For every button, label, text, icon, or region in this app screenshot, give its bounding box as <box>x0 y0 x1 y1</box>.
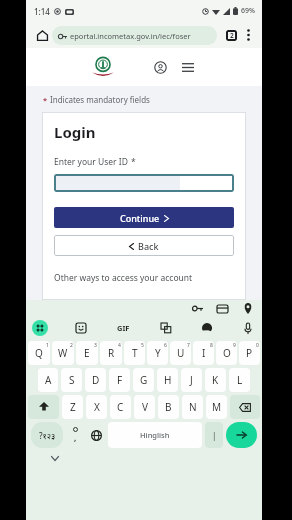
button[interactable]: Q <box>28 341 50 365</box>
button[interactable]: F <box>109 368 130 392</box>
staticText: Q <box>35 346 43 360</box>
button[interactable]: | <box>205 422 223 448</box>
staticText: Y <box>155 346 161 360</box>
button[interactable]: B <box>158 395 179 419</box>
button[interactable]: S <box>61 368 82 392</box>
staticText: K <box>212 373 219 387</box>
button[interactable]: Account <box>150 57 170 77</box>
staticText: GIF <box>117 323 130 333</box>
button[interactable]: Shift <box>28 395 59 419</box>
button[interactable]: Themes <box>199 320 215 336</box>
staticText: I <box>202 346 206 360</box>
staticText: P <box>246 346 253 360</box>
staticText: B <box>165 400 172 414</box>
staticText: 3 <box>94 342 97 349</box>
staticText: C <box>117 400 124 414</box>
button[interactable]: X <box>86 395 107 419</box>
button[interactable]: P <box>239 341 260 365</box>
button[interactable]: GIF <box>114 319 132 337</box>
button[interactable]: Voice input <box>240 320 256 336</box>
staticText: X <box>94 400 100 414</box>
staticText: V <box>142 400 148 414</box>
staticText: M <box>212 400 222 414</box>
staticText: A <box>45 373 52 387</box>
button[interactable]: Emoji <box>73 320 89 336</box>
staticText: 5 <box>141 342 144 349</box>
staticText: 2 <box>230 31 234 40</box>
button[interactable]: Home <box>32 25 52 45</box>
button[interactable]: O <box>216 341 237 365</box>
button[interactable]: ?१२३ <box>31 422 63 448</box>
button[interactable]: Backspace <box>230 395 260 419</box>
button[interactable]: Payment cards <box>216 302 229 315</box>
button[interactable]: N <box>182 395 203 419</box>
button[interactable]: Hide keyboard <box>48 451 62 465</box>
button[interactable]: U <box>170 341 191 365</box>
button[interactable]: Comma <box>66 422 84 448</box>
button[interactable]: eportal.incometax.gov.in/iec/foser <box>52 26 217 45</box>
button[interactable]: L <box>229 368 250 392</box>
staticText: Continue <box>120 212 160 224</box>
staticText: 1 <box>46 342 49 349</box>
staticText: F <box>117 373 123 387</box>
button[interactable]: D <box>85 368 106 392</box>
button[interactable]: Change language <box>87 422 105 448</box>
button[interactable]: A <box>38 368 58 392</box>
staticText: * <box>131 156 136 168</box>
button[interactable] <box>54 174 234 192</box>
staticText: 6 <box>164 342 167 349</box>
staticText: O <box>223 346 231 360</box>
staticText: Indicates mandatory fields <box>50 94 150 105</box>
button[interactable]: W <box>52 341 74 365</box>
button[interactable]: T <box>124 341 145 365</box>
staticText: U <box>177 346 185 360</box>
staticText: Other ways to access your account <box>54 272 193 284</box>
button[interactable]: I <box>193 341 214 365</box>
button[interactable]: Enter <box>226 422 257 448</box>
button[interactable]: Addresses <box>241 302 254 315</box>
button[interactable]: K <box>205 368 226 392</box>
button[interactable]: Back <box>54 235 234 256</box>
staticText: * <box>43 95 48 105</box>
staticText: T <box>132 346 138 360</box>
staticText: N <box>189 400 197 414</box>
button[interactable]: C <box>110 395 131 419</box>
button[interactable]: Menu <box>178 57 198 77</box>
button[interactable]: H <box>157 368 178 392</box>
button[interactable]: J <box>181 368 202 392</box>
staticText: 69% <box>241 6 255 16</box>
button[interactable]: Tabs <box>222 26 240 44</box>
button[interactable]: Hinglish <box>108 422 202 448</box>
button[interactable]: Translate <box>158 320 174 336</box>
staticText: 4 <box>118 342 121 349</box>
staticText: W <box>58 346 68 360</box>
staticText: E <box>84 346 90 360</box>
button[interactable]: M <box>206 395 227 419</box>
staticText: J <box>190 373 193 387</box>
staticText: L <box>237 373 243 387</box>
button[interactable]: Y <box>147 341 168 365</box>
button[interactable]: More options <box>240 27 256 43</box>
button[interactable]: Passwords <box>191 302 204 315</box>
button[interactable]: Keyboard options <box>32 320 48 336</box>
staticText: 7 <box>187 342 190 349</box>
button[interactable]: R <box>100 341 122 365</box>
staticText: ?१२३ <box>39 430 56 441</box>
staticText: eportal.incometax.gov.in/iec/foser <box>70 31 191 41</box>
staticText: 8 <box>210 342 213 349</box>
staticText: | <box>212 430 217 441</box>
staticText: , <box>74 432 77 443</box>
button[interactable]: G <box>133 368 154 392</box>
button[interactable]: E <box>76 341 98 365</box>
staticText: 2 <box>70 342 73 349</box>
button[interactable]: Z <box>62 395 83 419</box>
staticText: Hinglish <box>140 430 170 440</box>
button[interactable]: Continue <box>54 207 234 228</box>
staticText: Z <box>70 400 76 414</box>
button[interactable]: V <box>134 395 155 419</box>
staticText: D <box>92 373 100 387</box>
staticText: H <box>164 373 172 387</box>
staticText: Login <box>54 122 96 142</box>
staticText: R <box>108 346 115 360</box>
staticText: S <box>69 373 75 387</box>
